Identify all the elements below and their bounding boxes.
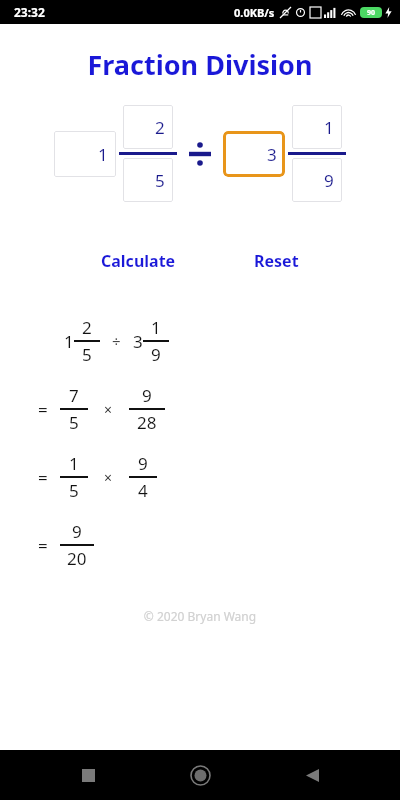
staticText: × bbox=[104, 400, 113, 419]
button[interactable]: Recent apps bbox=[64, 751, 112, 799]
staticText: 1 bbox=[151, 316, 161, 339]
staticText: = bbox=[38, 466, 48, 489]
button[interactable]: 2 bbox=[123, 105, 173, 149]
staticText: = bbox=[38, 398, 48, 421]
staticText: 20 bbox=[67, 547, 87, 570]
staticText: 0.0KB/s bbox=[234, 5, 275, 20]
staticText: © 2020 Bryan Wang bbox=[0, 608, 400, 624]
staticText: ÷ bbox=[112, 331, 121, 351]
staticText: 9 bbox=[72, 520, 82, 543]
staticText: 3 bbox=[267, 143, 277, 166]
staticText: 1 bbox=[98, 143, 108, 166]
button[interactable]: 1 bbox=[54, 131, 116, 177]
staticText: 90 bbox=[367, 8, 376, 18]
staticText: 9 bbox=[324, 169, 334, 192]
staticText: 9 bbox=[142, 384, 152, 407]
staticText: 2 bbox=[82, 316, 92, 339]
staticText: 5 bbox=[69, 479, 79, 502]
staticText: 5 bbox=[155, 169, 165, 192]
button[interactable]: Back bbox=[288, 751, 336, 799]
staticText: Fraction Division bbox=[87, 46, 313, 83]
staticText: 9 bbox=[151, 343, 161, 366]
staticText: 5 bbox=[69, 411, 79, 434]
button[interactable]: 3 bbox=[223, 131, 285, 177]
button[interactable]: 9 bbox=[292, 158, 342, 202]
button[interactable]: 5 bbox=[123, 158, 173, 202]
button[interactable]: Calculate bbox=[85, 244, 192, 278]
staticText: 23:32 bbox=[14, 4, 45, 20]
staticText: 2 bbox=[155, 116, 165, 139]
staticText: 7 bbox=[69, 384, 79, 407]
staticText: 3 bbox=[133, 330, 143, 353]
staticText: 1 bbox=[324, 116, 334, 139]
staticText: 9 bbox=[138, 452, 148, 475]
staticText: = bbox=[38, 534, 48, 557]
staticText: 28 bbox=[137, 411, 157, 434]
staticText: 1 bbox=[64, 330, 74, 353]
staticText: × bbox=[104, 468, 113, 487]
staticText: 4 bbox=[138, 479, 148, 502]
staticText: Reset bbox=[254, 250, 299, 272]
button[interactable]: 1 bbox=[292, 105, 342, 149]
button[interactable]: Reset bbox=[238, 244, 315, 278]
staticText: 5 bbox=[82, 343, 92, 366]
staticText: 1 bbox=[69, 452, 79, 475]
staticText: Calculate bbox=[101, 250, 176, 272]
button[interactable]: Home bbox=[176, 751, 224, 799]
